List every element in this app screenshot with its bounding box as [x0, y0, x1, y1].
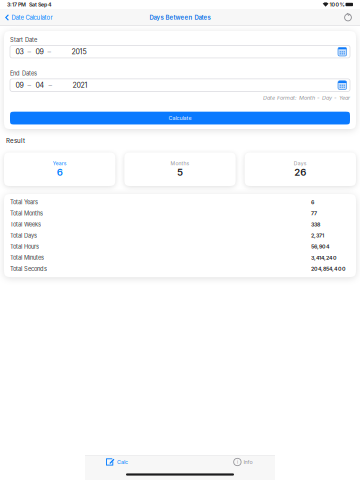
staticText: –: [44, 81, 72, 89]
button[interactable]: i: [211, 455, 275, 469]
staticText: End Dates: [10, 70, 37, 77]
staticText: i: [237, 459, 238, 465]
staticText: [344, 1, 345, 8]
staticText: –: [43, 47, 71, 56]
staticText: Sat Sep 4: [29, 1, 52, 8]
staticText: 204,854,400: [311, 266, 346, 272]
staticText: 56,904: [311, 243, 330, 250]
staticText: 3:17 PM: [7, 1, 26, 8]
staticText: 2,371: [311, 232, 324, 239]
staticText: Start Date: [10, 36, 37, 43]
staticText: 26: [294, 166, 306, 178]
staticText: Result: [6, 137, 25, 144]
staticText: Total Years: [10, 199, 38, 206]
staticText: Years: [53, 160, 67, 166]
staticText: 03: [15, 47, 23, 56]
staticText: Total Hours: [10, 243, 39, 250]
button[interactable]: Days: [245, 152, 356, 186]
staticText: 09: [35, 47, 43, 56]
staticText: Days: [294, 160, 307, 166]
staticText: –: [23, 47, 35, 56]
staticText: 3,414,240: [311, 254, 337, 261]
button[interactable]: Choose date: [338, 80, 347, 90]
staticText: 04: [35, 81, 44, 89]
button[interactable]: Years: [4, 152, 115, 186]
staticText: 6: [57, 166, 63, 178]
button[interactable]: Choose date: [338, 47, 347, 56]
button[interactable]: Date Calculator: [0, 9, 58, 26]
staticText: Total Seconds: [10, 265, 47, 272]
staticText: 2021: [72, 81, 87, 89]
staticText: Date Calculator: [12, 14, 53, 21]
staticText: Total Weeks: [10, 221, 41, 228]
staticText: 6: [311, 199, 314, 205]
button[interactable]: Calc: [85, 455, 149, 469]
staticText: 09: [15, 81, 23, 89]
button[interactable]: Calculate: [10, 112, 350, 124]
button[interactable]: Reset: [339, 9, 357, 26]
staticText: –: [23, 81, 35, 89]
staticText: 100%: [328, 1, 344, 8]
staticText: 2015: [71, 47, 86, 56]
staticText: Total Months: [10, 210, 43, 217]
staticText: Total Minutes: [10, 254, 44, 261]
staticText: Days Between Dates: [149, 14, 210, 21]
staticText: Total Days: [10, 232, 37, 239]
staticText: Calc: [117, 459, 128, 465]
staticText: Calculate: [168, 115, 191, 121]
staticText: Months: [170, 160, 189, 166]
staticText: 338: [311, 221, 320, 228]
button[interactable]: Months: [124, 152, 236, 186]
staticText: Info: [244, 459, 253, 465]
staticText: 5: [177, 166, 183, 178]
staticText: Date Format: Month - Day - Year: [263, 94, 350, 101]
staticText: 77: [311, 210, 317, 217]
